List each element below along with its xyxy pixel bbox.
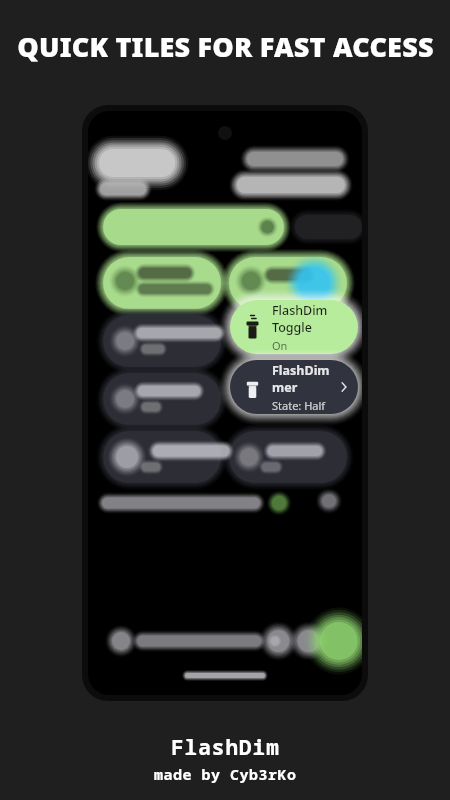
staticText: made by Cyb3rKo	[154, 764, 297, 784]
other: Open FlashDimmer details	[338, 381, 350, 393]
staticText: FlashDimmer	[272, 362, 338, 396]
staticText: On	[272, 338, 288, 353]
staticText: QUICK TILES FOR FAST ACCESS	[17, 28, 434, 65]
button[interactable]: FlashDim Toggle	[230, 300, 358, 354]
staticText: FlashDim Toggle	[272, 302, 348, 336]
button[interactable]: FlashDimmer	[230, 360, 358, 414]
staticText: State: Half	[272, 398, 326, 413]
staticText: FlashDim	[171, 733, 280, 762]
